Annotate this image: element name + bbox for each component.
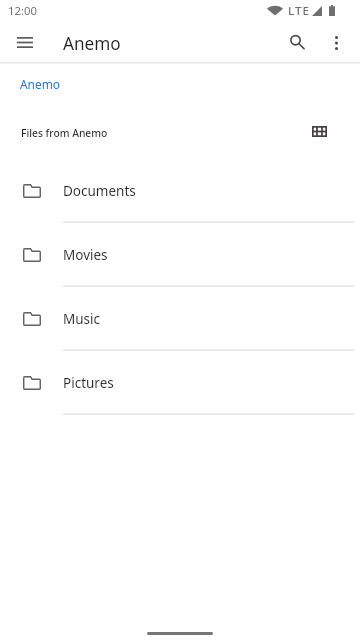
staticText: Movies xyxy=(63,246,108,264)
staticText: Pictures xyxy=(63,374,114,392)
button[interactable]: Pictures xyxy=(0,351,360,415)
staticText: Music xyxy=(63,310,101,328)
staticText: Files from Anemo xyxy=(21,126,108,140)
button[interactable]: Switch to grid view xyxy=(305,117,333,145)
staticText: 12:00 xyxy=(8,3,37,18)
staticText: LTE xyxy=(288,3,310,19)
staticText: Documents xyxy=(63,182,136,200)
button[interactable]: Anemo xyxy=(12,72,68,96)
button[interactable]: Documents xyxy=(0,159,360,223)
button[interactable]: Navigation menu xyxy=(8,23,41,62)
button[interactable]: Movies xyxy=(0,223,360,287)
staticText: Anemo xyxy=(20,76,60,92)
button[interactable]: More options xyxy=(321,23,352,62)
button[interactable]: Search xyxy=(281,23,314,62)
staticText: Anemo xyxy=(63,32,121,55)
button[interactable]: Music xyxy=(0,287,360,351)
